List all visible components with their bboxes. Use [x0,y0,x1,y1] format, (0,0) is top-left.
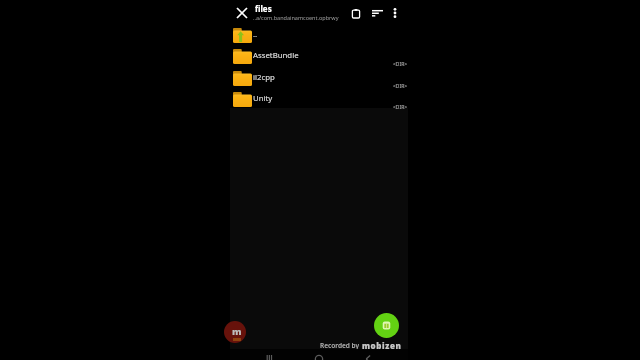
button[interactable]: More options [387,5,403,21]
button[interactable]: Home [312,353,326,360]
button[interactable]: Close [232,3,252,23]
button[interactable]: Back [361,353,375,360]
button[interactable]: Recents [262,353,276,360]
staticText: Unity [253,93,390,104]
button[interactable]: Clipboard [348,5,364,21]
button[interactable]: New file [374,313,399,338]
button[interactable]: il2cpp [229,68,407,89]
button[interactable]: Sort [369,5,385,21]
staticText: <DIR> [393,104,408,111]
staticText: .. [253,29,405,40]
staticText: m [232,325,242,338]
staticText: <DIR> [393,61,408,68]
staticText: files [255,3,272,14]
staticText: Recorded by [320,341,360,350]
staticText: AssetBundle [253,50,390,61]
button[interactable]: Unity [229,89,407,110]
staticText: mobizen [362,340,402,351]
staticText: il2cpp [253,72,390,83]
button[interactable]: .. [229,25,407,46]
button[interactable]: AssetBundle [229,46,407,67]
staticText: ..a/com.bandainamcoent.opbrwy [253,14,339,21]
staticText: <DIR> [393,83,408,90]
